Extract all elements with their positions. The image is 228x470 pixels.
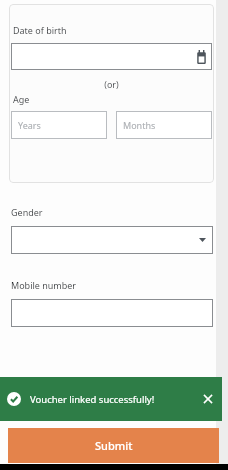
button[interactable]: Pick date: [11, 43, 212, 70]
button[interactable]: Voucher linked successfully!: [0, 377, 222, 421]
button[interactable]: Months: [116, 111, 212, 139]
staticText: (or): [11, 78, 212, 90]
button[interactable]: Years: [11, 111, 107, 139]
staticText: Years: [18, 119, 41, 131]
staticText: Age: [13, 93, 30, 105]
button[interactable]: Pick date: [196, 50, 207, 64]
staticText: Mobile number: [11, 279, 77, 291]
staticText: Date of birth: [13, 24, 67, 36]
button[interactable]: Dismiss: [202, 393, 214, 405]
staticText: Gender: [11, 206, 43, 218]
button[interactable]: Submit: [8, 428, 219, 463]
staticText: Submit: [95, 438, 133, 453]
button[interactable]: Open gender dropdown: [11, 226, 213, 254]
staticText: Voucher linked successfully!: [30, 393, 202, 406]
staticText: Months: [123, 119, 156, 131]
other: Open gender dropdown: [199, 238, 206, 242]
button[interactable]: [11, 299, 213, 327]
